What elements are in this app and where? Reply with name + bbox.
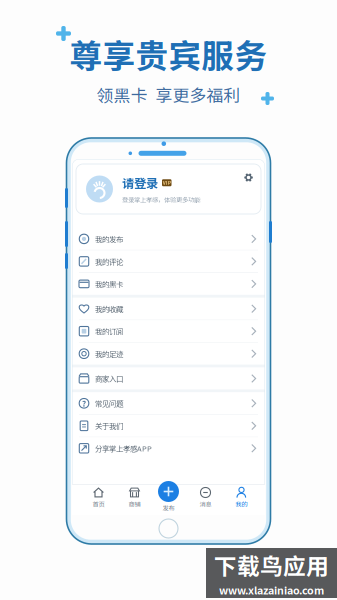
staticText: 下载鸟应用: [214, 548, 329, 581]
staticText: ?: [82, 397, 86, 409]
staticText: VIP: [163, 179, 171, 186]
staticText: 消息: [199, 499, 211, 509]
staticText: 关于我们: [95, 420, 123, 431]
staticText: 我的足迹: [95, 348, 123, 359]
staticText: 请登录: [122, 174, 158, 192]
button[interactable]: ?: [72, 392, 265, 414]
button[interactable]: 首页: [82, 484, 114, 514]
staticText: 常见问题: [95, 398, 123, 409]
staticText: www.xlazainiao.com: [219, 582, 324, 598]
button[interactable]: 分享掌上孝感APP: [72, 437, 265, 459]
staticText: 分享掌上孝感APP: [95, 443, 152, 454]
button[interactable]: 我的足迹: [72, 343, 265, 365]
button[interactable]: 我的订阅: [72, 320, 265, 342]
button[interactable]: 我的: [225, 484, 257, 514]
button[interactable]: 发布: [152, 481, 184, 515]
button[interactable]: 我的黑卡: [72, 273, 265, 295]
staticText: 我的订阅: [95, 326, 123, 337]
button[interactable]: 请登录: [76, 164, 261, 214]
button[interactable]: 设置: [241, 170, 256, 185]
staticText: 登录掌上孝感，体验更多功能: [122, 195, 200, 204]
staticText: 我的: [235, 499, 247, 509]
button[interactable]: 商铺: [118, 484, 150, 514]
staticText: 发布: [162, 503, 174, 512]
staticText: 我的收藏: [95, 303, 123, 314]
staticText: 我的发布: [95, 233, 123, 244]
staticText: 商铺: [128, 499, 140, 509]
staticText: 我的评论: [95, 256, 123, 267]
staticText: 尊享贵宾服务: [69, 30, 267, 77]
staticText: 首页: [92, 499, 104, 509]
button[interactable]: 关于我们: [72, 415, 265, 437]
button[interactable]: 商家入口: [72, 368, 265, 389]
button[interactable]: 我的评论: [72, 250, 265, 272]
button[interactable]: 消息: [189, 484, 221, 514]
staticText: 领黑卡 享更多福利: [96, 82, 240, 107]
staticText: 商家入口: [95, 373, 123, 384]
staticText: 我的黑卡: [95, 278, 123, 289]
button[interactable]: 我的收藏: [72, 298, 265, 320]
button[interactable]: 我的发布: [72, 228, 265, 250]
